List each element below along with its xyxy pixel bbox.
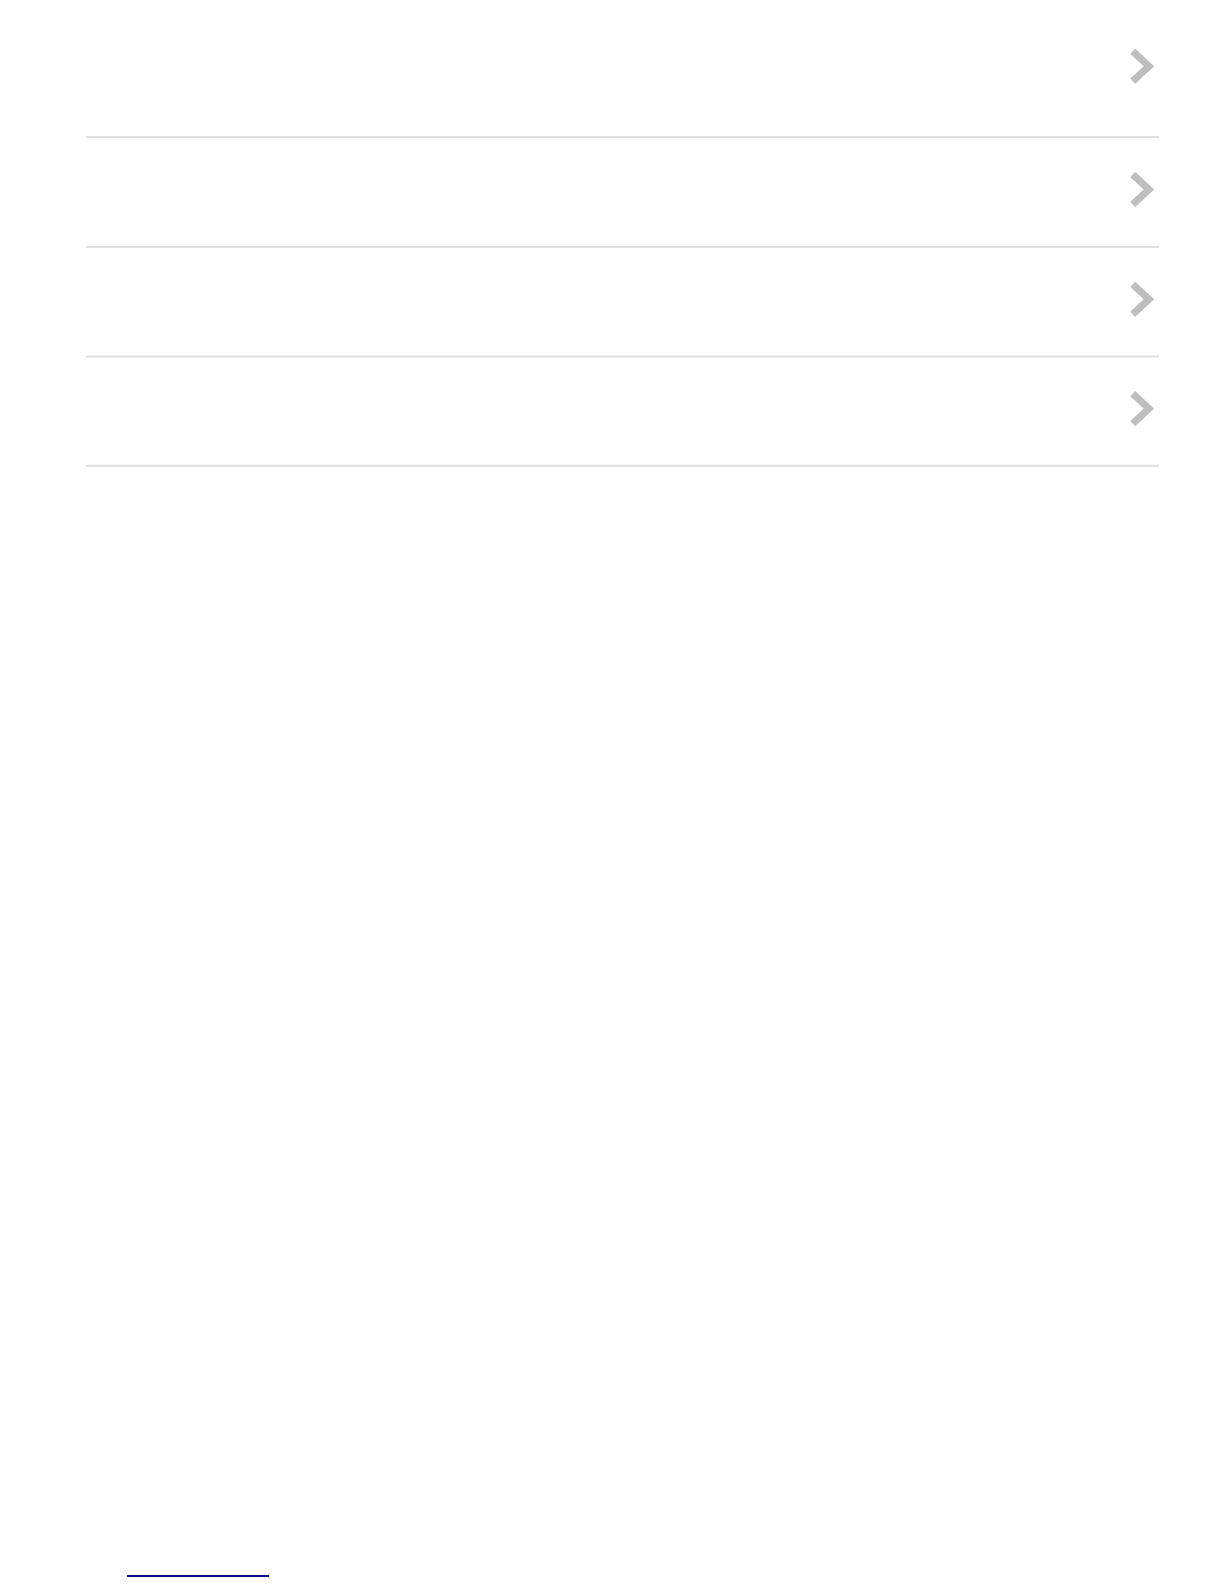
button[interactable]: Fourth item xyxy=(86,357,1159,467)
button[interactable]: Third item xyxy=(86,248,1159,357)
button[interactable]: Second item xyxy=(86,138,1159,248)
button[interactable]: First item xyxy=(86,0,1159,138)
button[interactable]: Footer link xyxy=(127,1543,269,1577)
